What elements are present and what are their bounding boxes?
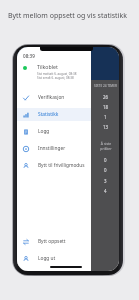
staticText: Statistikk — [38, 111, 59, 118]
staticText: Bytt til frivilligmodus — [38, 162, 85, 169]
button[interactable]: Logg ut — [17, 252, 91, 265]
button[interactable]: Bytt oppsett — [17, 235, 91, 248]
staticText: Sist mottatt 6. august, 08:38 — [37, 72, 77, 76]
staticText: Verifikasjon — [38, 94, 65, 101]
staticText: 1 — [104, 114, 107, 120]
staticText: 13 — [103, 124, 109, 130]
staticText: Logg ut — [38, 255, 56, 262]
button[interactable]: Bytt til frivilligmodus — [17, 159, 91, 172]
button[interactable]: Logg — [17, 125, 91, 138]
staticText: 3 — [104, 178, 107, 184]
staticText: Logg — [38, 128, 50, 135]
staticText: 0 — [104, 167, 107, 173]
staticText: Tilkoblet — [37, 63, 58, 70]
staticText: Å siste prikker — [100, 141, 112, 151]
staticText: 08:39 — [23, 53, 35, 59]
staticText: Innstillinger — [38, 145, 66, 152]
staticText: 4 — [104, 188, 107, 194]
staticText: Bytt oppsett — [38, 238, 66, 245]
button[interactable]: Verifikasjon — [17, 91, 91, 104]
staticText: SISTE 24 TIMER — [94, 84, 117, 88]
button[interactable]: Innstillinger — [17, 142, 91, 155]
button[interactable]: Statistikk — [17, 108, 91, 121]
staticText: Sist sendt 6. august, 08:38 — [37, 76, 74, 80]
staticText: 18 — [103, 104, 109, 110]
staticText: 0 — [104, 157, 107, 163]
staticText: Bytt mellom oppsett og vis statistikk — [8, 11, 127, 21]
staticText: 26 — [103, 94, 109, 100]
